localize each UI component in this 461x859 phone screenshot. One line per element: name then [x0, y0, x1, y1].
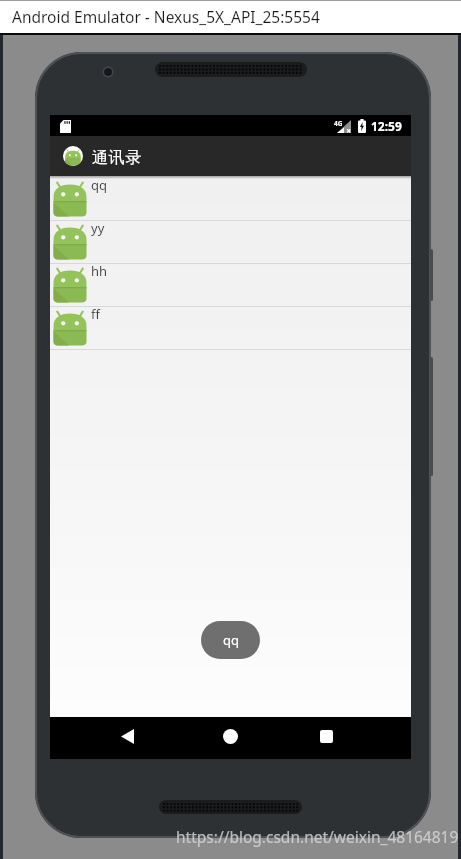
button[interactable]	[320, 730, 333, 743]
staticText: 4G	[334, 119, 343, 128]
button[interactable]: yy	[50, 221, 411, 264]
button[interactable]: qq	[201, 621, 260, 659]
button[interactable]	[121, 729, 134, 744]
button[interactable]: Android Emulator - Nexus_5X_API_25:5554	[0, 0, 461, 35]
staticText: yy	[91, 219, 105, 237]
staticText: 12:59	[371, 118, 402, 134]
button[interactable]: ff	[50, 307, 411, 350]
staticText: ff	[91, 305, 100, 323]
staticText: 通讯录	[92, 148, 143, 168]
staticText: hh	[91, 262, 108, 280]
button[interactable]: hh	[50, 264, 411, 307]
staticText: Android Emulator - Nexus_5X_API_25:5554	[12, 6, 320, 27]
staticText: https://blog.csdn.net/weixin_48164819	[176, 826, 459, 847]
button[interactable]: qq	[50, 178, 411, 221]
staticText: qq	[91, 176, 107, 194]
button[interactable]	[223, 729, 238, 744]
button[interactable]: 通讯录	[50, 136, 411, 176]
staticText: qq	[223, 631, 239, 649]
